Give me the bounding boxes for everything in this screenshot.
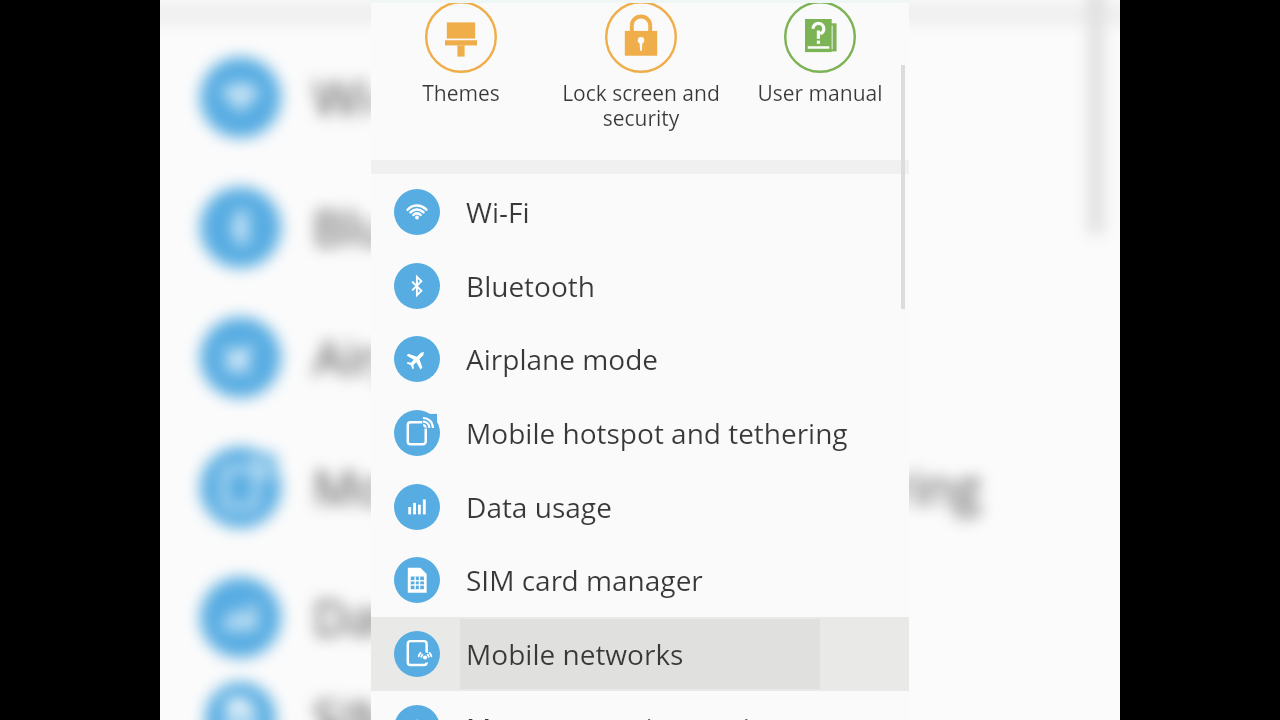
staticText: Mobile hotspot and tethering bbox=[466, 414, 848, 452]
staticText: Themes bbox=[422, 79, 500, 108]
staticText: Mobile networks bbox=[466, 635, 684, 673]
staticText: Wi-Fi bbox=[313, 64, 425, 131]
button[interactable]: Themes bbox=[371, 0, 551, 108]
staticText: SIM card manager bbox=[466, 561, 703, 599]
button[interactable]: Mobile networks bbox=[371, 617, 909, 691]
button[interactable]: Bluetooth bbox=[371, 249, 909, 323]
button[interactable]: More connection settings bbox=[371, 691, 909, 720]
button[interactable]: Airplane mode bbox=[371, 322, 909, 396]
button[interactable]: Wi-Fi bbox=[371, 175, 909, 249]
button[interactable]: Lock screen and security bbox=[551, 0, 730, 132]
button[interactable]: Mobile hotspot and tethering bbox=[371, 396, 909, 470]
staticText: Mobile hotspot and tethering bbox=[313, 454, 981, 521]
staticText: Airplane mode bbox=[466, 340, 659, 378]
button[interactable]: SIM card manager bbox=[371, 543, 909, 617]
button[interactable]: User manual bbox=[730, 0, 909, 108]
staticText: Bluetooth bbox=[313, 194, 539, 261]
staticText: Wi-Fi bbox=[466, 193, 530, 231]
staticText: User manual bbox=[757, 79, 883, 108]
button[interactable]: Data usage bbox=[371, 470, 909, 544]
staticText: Airplane mode bbox=[313, 324, 650, 391]
staticText: Data usage bbox=[466, 488, 612, 526]
staticText: Bluetooth bbox=[466, 267, 595, 305]
staticText: Lock screen and security bbox=[562, 79, 720, 132]
staticText: Data usage bbox=[313, 584, 569, 651]
staticText: More connection settings bbox=[466, 709, 796, 720]
staticText: SIM card manager bbox=[313, 684, 728, 720]
